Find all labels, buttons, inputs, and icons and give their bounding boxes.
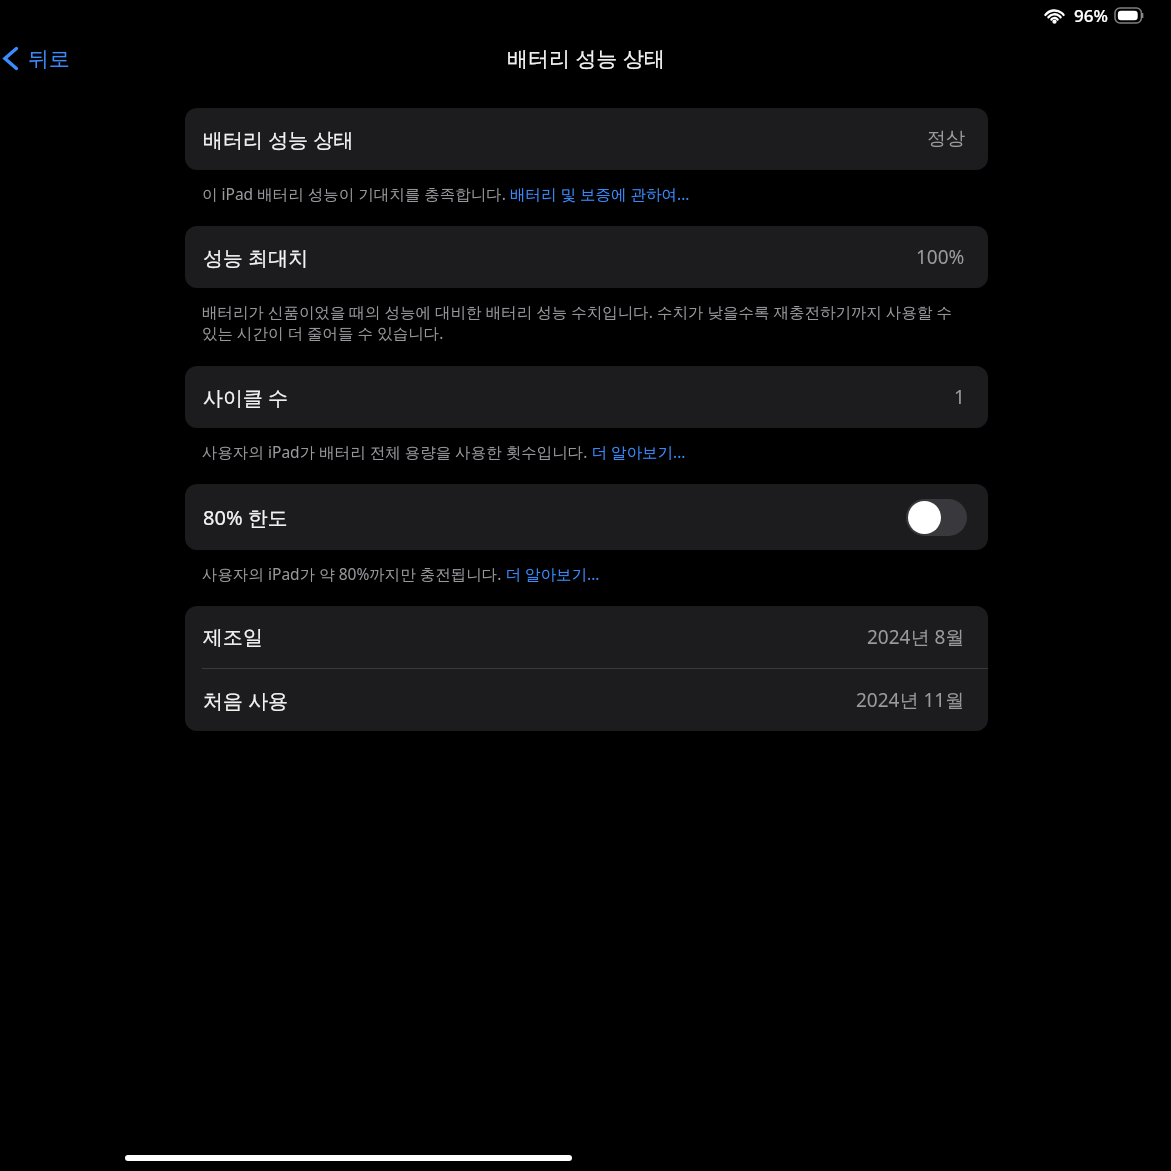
staticText: 사용자의 iPad가 약 80%까지만 충전됩니다. 더 알아보기... <box>202 563 964 584</box>
button[interactable]: 뒤로 <box>0 37 82 80</box>
staticText: 사용자의 iPad가 배터리 전체 용량을 사용한 횟수입니다. 더 알아보기.… <box>202 441 964 462</box>
staticText: 제조일 <box>203 625 263 650</box>
button[interactable]: 80% 한도 <box>185 484 988 550</box>
staticText: 배터리 성능 상태 <box>507 44 665 73</box>
staticText: 100% <box>916 244 965 270</box>
button[interactable]: 80% 한도 전환 <box>906 499 967 536</box>
button[interactable]: 사이클 수 <box>185 366 988 428</box>
button[interactable]: 제조일 <box>185 606 988 668</box>
staticText: 뒤로 <box>28 46 70 72</box>
button[interactable]: 처음 사용 <box>185 669 988 731</box>
staticText: 처음 사용 <box>203 687 289 714</box>
staticText: 정상 <box>927 127 965 151</box>
button[interactable]: 배터리 성능 상태 <box>185 108 988 170</box>
staticText: 배터리가 신품이었을 때의 성능에 대비한 배터리 성능 수치입니다. 수치가 … <box>202 301 964 344</box>
staticText: 배터리 성능 상태 <box>203 126 354 153</box>
staticText: 성능 최대치 <box>203 244 309 271</box>
staticText: 80% 한도 <box>203 504 288 531</box>
staticText: 2024년 8월 <box>867 624 965 650</box>
staticText: 1 <box>954 384 965 410</box>
staticText: 96% <box>1074 4 1108 27</box>
staticText: 사이클 수 <box>203 384 289 411</box>
staticText: 이 iPad 배터리 성능이 기대치를 충족합니다. 배터리 및 보증에 관하여… <box>202 183 964 204</box>
button[interactable]: 성능 최대치 <box>185 226 988 288</box>
staticText: 2024년 11월 <box>856 687 965 713</box>
